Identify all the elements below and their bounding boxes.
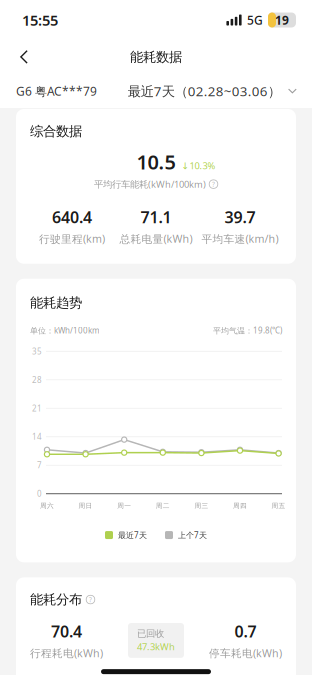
staticText: 周日 [79, 502, 93, 510]
staticText: 47.3kWh [137, 640, 175, 653]
staticText: 周二 [156, 502, 170, 510]
staticText: 0.7 [234, 621, 256, 642]
button[interactable]: 返回 [5, 41, 43, 73]
staticText: 行程耗电(kWh) [30, 646, 103, 660]
staticText: 总耗电量(kWh) [119, 232, 192, 246]
staticText: 平均车速(km/h) [201, 232, 278, 246]
staticText: 21 [32, 403, 42, 414]
staticText: ? [212, 180, 215, 189]
staticText: 上个7天 [178, 530, 207, 540]
staticText: ↓10.3% [181, 159, 215, 172]
staticText: 15:55 [22, 10, 58, 30]
staticText: 39.7 [224, 206, 255, 227]
staticText: 640.4 [52, 206, 92, 227]
staticText: 0 [37, 488, 42, 499]
staticText: 14 [32, 431, 42, 442]
staticText: 周三 [194, 502, 208, 510]
staticText: 71.1 [140, 206, 171, 227]
staticText: 平均行车能耗(kWh/100km) [94, 178, 206, 190]
staticText: 周四 [233, 502, 247, 510]
staticText: 70.4 [51, 621, 82, 642]
staticText: 已回收 [137, 628, 164, 639]
staticText: 周五 [272, 502, 286, 510]
staticText: 综合数据 [30, 123, 82, 139]
staticText: 平均气温：19.8(°C) [213, 325, 282, 336]
staticText: 周六 [40, 502, 54, 510]
staticText: G6 粤AC***79 [16, 83, 97, 99]
staticText: 单位：kWh/100km [30, 325, 99, 336]
staticText: 最近7天 [118, 530, 147, 540]
staticText: 7 [37, 460, 42, 470]
staticText: 最近7天（02.28~03.06） [128, 82, 281, 100]
staticText: 28 [32, 374, 42, 385]
button[interactable]: G6 粤AC***79 [16, 83, 97, 99]
staticText: 35 [32, 346, 42, 357]
staticText: 10.5 [136, 148, 175, 175]
staticText: 能耗分布 [30, 591, 82, 608]
staticText: 停车耗电(kWh) [209, 646, 282, 660]
staticText: 能耗数据 [130, 49, 182, 65]
staticText: 5G [247, 12, 263, 28]
staticText: 能耗趋势 [30, 295, 82, 311]
staticText: 周一 [117, 502, 131, 510]
staticText: ? [89, 595, 92, 604]
staticText: 行驶里程(km) [39, 232, 105, 246]
button[interactable]: 最近7天（02.28~03.06） [128, 82, 297, 100]
staticText: 19 [275, 12, 289, 28]
